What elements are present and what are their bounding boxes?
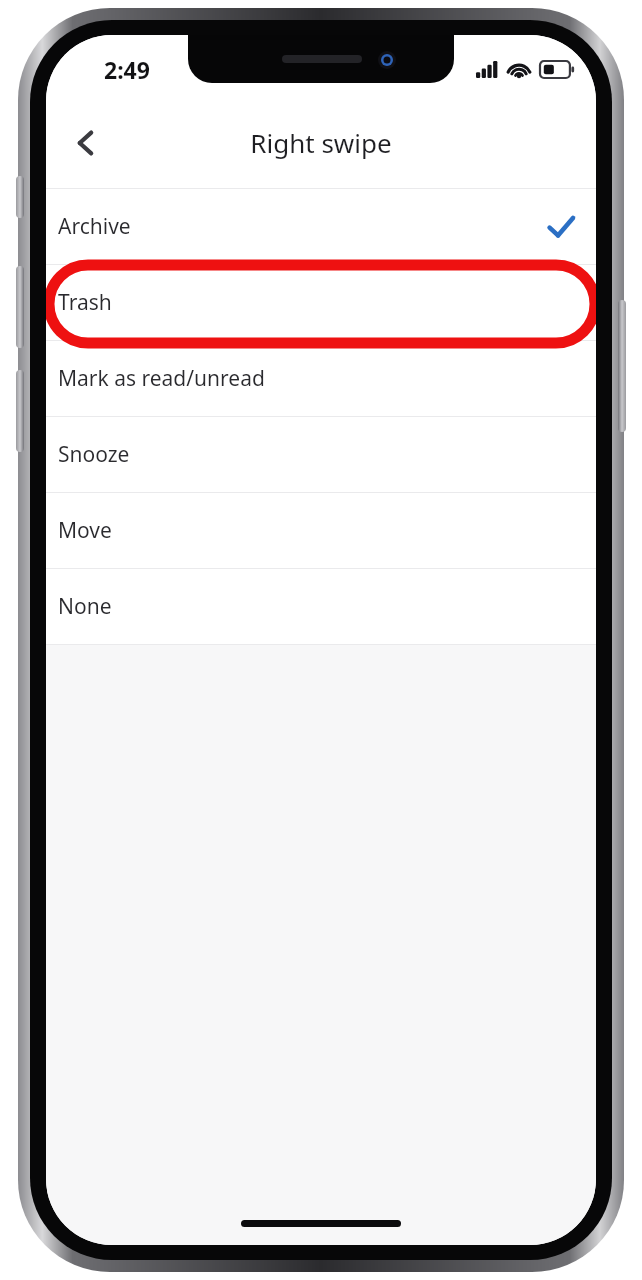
button[interactable]: Archive (46, 189, 596, 264)
staticText: None (58, 592, 576, 621)
staticText: Mark as read/unread (58, 364, 576, 393)
button[interactable]: Back (54, 111, 118, 175)
button[interactable]: Move (46, 493, 596, 568)
staticText: Archive (58, 212, 546, 241)
staticText: Move (58, 516, 576, 545)
staticText: Trash (58, 288, 576, 317)
staticText: Right swipe (250, 125, 392, 160)
button[interactable]: Trash (46, 265, 596, 340)
button[interactable]: Mark as read/unread (46, 341, 596, 416)
button[interactable]: None (46, 569, 596, 644)
button[interactable]: Snooze (46, 417, 596, 492)
staticText: Snooze (58, 440, 576, 469)
staticText: 2:49 (104, 54, 150, 85)
